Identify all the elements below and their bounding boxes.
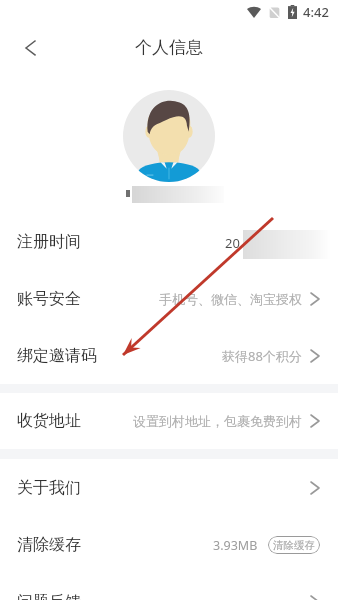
staticText: 关于我们 bbox=[17, 478, 81, 498]
staticText: 绑定邀请码 bbox=[17, 346, 97, 366]
staticText: 个人信息 bbox=[135, 37, 203, 58]
button[interactable]: Avatar bbox=[123, 90, 215, 182]
staticText: 3.93MB bbox=[213, 537, 258, 554]
staticText: 20 bbox=[225, 234, 240, 252]
staticText: 问题反馈 bbox=[17, 592, 81, 600]
button[interactable]: 问题反馈 bbox=[0, 573, 338, 600]
button[interactable]: 收货地址 bbox=[0, 393, 338, 449]
staticText: 手机号、微信、淘宝授权 bbox=[159, 291, 302, 307]
staticText: 收货地址 bbox=[17, 411, 81, 431]
button[interactable]: 注册时间 bbox=[0, 213, 338, 270]
button[interactable]: 关于我们 bbox=[0, 459, 338, 516]
button[interactable]: 绑定邀请码 bbox=[0, 327, 338, 384]
staticText: 4:42 bbox=[303, 3, 329, 21]
button[interactable]: 清除缓存 bbox=[0, 516, 338, 573]
staticText: 获得88个积分 bbox=[222, 347, 302, 365]
staticText: 清除缓存 bbox=[273, 539, 315, 552]
button[interactable]: 清除缓存 bbox=[268, 536, 320, 554]
staticText: 注册时间 bbox=[17, 232, 81, 252]
button[interactable]: Back bbox=[12, 30, 48, 66]
button[interactable]: 账号安全 bbox=[0, 270, 338, 327]
staticText: 账号安全 bbox=[17, 289, 81, 309]
staticText: 设置到村地址，包裹免费到村 bbox=[133, 413, 302, 429]
staticText: 清除缓存 bbox=[17, 535, 81, 555]
